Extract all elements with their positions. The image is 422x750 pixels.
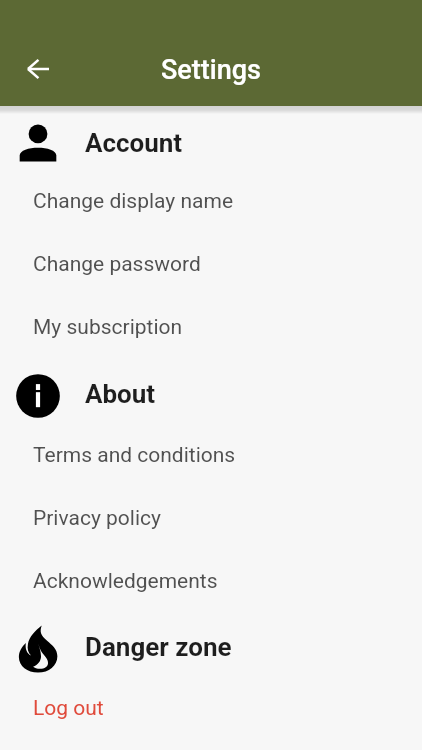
staticText: About [85,379,156,409]
staticText: Danger zone [85,632,232,662]
button[interactable]: Log out [0,677,422,740]
button[interactable]: My subscription [0,296,422,359]
staticText: Privacy policy [33,506,161,531]
button[interactable]: Change display name [0,170,422,233]
button[interactable]: Terms and conditions [0,424,422,487]
button[interactable]: Privacy policy [0,487,422,550]
staticText: Log out [33,696,104,721]
staticText: Change password [33,252,201,277]
button[interactable]: Acknowledgements [0,550,422,613]
staticText: Acknowledgements [33,569,218,594]
button[interactable]: Back [14,45,62,93]
staticText: Settings [161,54,261,86]
button[interactable]: Change password [0,233,422,296]
staticText: Account [85,128,183,158]
staticText: Terms and conditions [33,443,236,468]
staticText: Change display name [33,189,234,214]
staticText: My subscription [33,315,183,340]
